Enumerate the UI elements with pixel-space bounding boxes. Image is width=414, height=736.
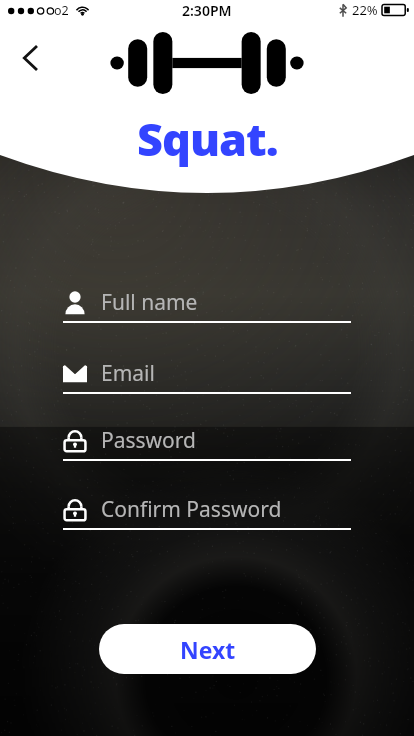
staticText: o2 [54,2,69,19]
button[interactable]: Back [8,36,52,80]
staticText: Squat. [137,108,278,169]
staticText: 2:30PM [182,1,232,20]
staticText: Confirm Password [101,495,282,524]
button[interactable]: Confirm Password [63,495,351,530]
button[interactable]: Email [63,359,351,394]
button[interactable]: Password [63,426,351,461]
staticText: 22% [352,1,378,19]
button[interactable]: Next [99,624,316,674]
staticText: Password [101,426,196,455]
button[interactable]: Full name [63,288,351,323]
staticText: Email [101,359,155,388]
staticText: Next [180,634,236,665]
staticText: Full name [101,288,198,317]
